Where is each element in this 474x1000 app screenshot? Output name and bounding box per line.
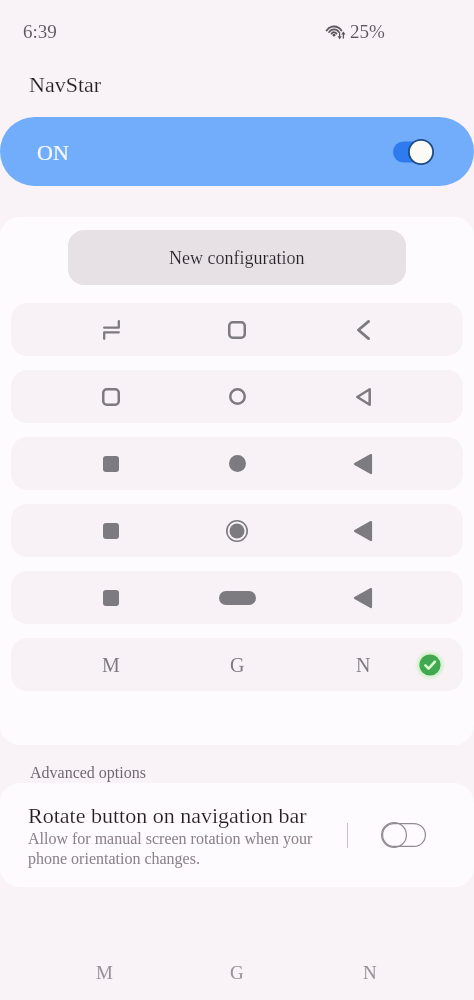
button[interactable]: N <box>303 944 436 1000</box>
staticText: Advanced options <box>30 764 146 782</box>
button[interactable]: Recents, square, back <box>11 303 463 356</box>
staticText: G <box>230 962 244 983</box>
staticText: G <box>230 654 245 676</box>
button[interactable]: G <box>170 944 303 1000</box>
button[interactable]: Square, pill, triangle <box>11 571 463 624</box>
staticText: M <box>96 962 113 983</box>
staticText: New configuration <box>169 248 305 268</box>
staticText: M <box>102 654 120 676</box>
staticText: N <box>363 962 377 983</box>
button[interactable]: Rotate button on navigation bar <box>0 783 474 887</box>
button[interactable]: Rotate button toggle <box>348 823 474 847</box>
staticText: ON <box>37 140 69 164</box>
button[interactable]: Square, circle, triangle filled <box>11 437 463 490</box>
button[interactable]: Enable navigation bar <box>393 139 434 165</box>
staticText: Rotate button on navigation bar <box>28 803 307 827</box>
staticText: Allow for manual screen rotation when yo… <box>28 830 318 867</box>
button[interactable]: M <box>38 944 170 1000</box>
button[interactable]: ON <box>0 117 474 186</box>
staticText: NavStar <box>29 72 102 96</box>
staticText: 6:39 <box>23 21 57 42</box>
button[interactable]: M <box>11 638 463 691</box>
staticText: N <box>356 654 371 676</box>
button[interactable]: Square, ring, triangle <box>11 504 463 557</box>
button[interactable]: New configuration <box>68 230 406 285</box>
button[interactable]: Square, circle, triangle outline <box>11 370 463 423</box>
staticText: 25% <box>350 21 385 42</box>
